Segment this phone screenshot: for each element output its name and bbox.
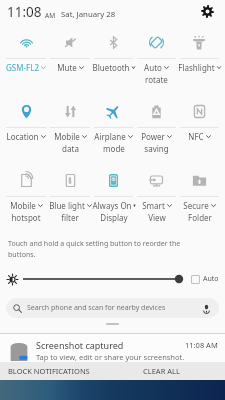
staticText: saving	[144, 143, 169, 154]
button[interactable]: NFC	[178, 95, 221, 164]
staticText: Screenshot captured	[36, 339, 124, 351]
staticText: CLEAR ALL	[143, 366, 180, 376]
button[interactable]: GSM-FL2	[4, 26, 48, 95]
staticText: View	[148, 212, 166, 223]
staticText: Mobile	[54, 131, 80, 142]
button[interactable]: Mute	[48, 26, 92, 95]
staticText: Search phone and scan for nearby devices	[27, 303, 166, 313]
button[interactable]: Secure	[178, 164, 221, 233]
staticText: Flashlight	[178, 62, 215, 73]
staticText: mode	[103, 143, 125, 154]
button[interactable]: Location	[4, 95, 48, 164]
button[interactable]: Mobile	[4, 164, 48, 233]
staticText: Folder	[188, 212, 212, 223]
staticText: hotspot	[11, 212, 41, 223]
staticText: Auto	[144, 62, 162, 73]
button[interactable]: Smart	[135, 164, 178, 233]
button[interactable]: Blue light	[48, 164, 92, 233]
button[interactable]: Brightness	[23, 272, 184, 286]
button[interactable]: Bluetooth	[92, 26, 135, 95]
button[interactable]: Mobile	[48, 95, 92, 164]
staticText: Touch and hold a quick setting button to…	[8, 239, 181, 259]
button[interactable]: Search phone and scan for nearby devices	[6, 298, 219, 318]
staticText: Always On	[92, 200, 132, 211]
staticText: Bluetooth	[92, 62, 130, 73]
staticText: Location	[6, 131, 39, 142]
staticText: 11:08 AM	[185, 340, 218, 350]
staticText: BLOCK NOTIFICATIONS	[8, 366, 90, 376]
button[interactable]: Flashlight	[178, 26, 221, 95]
button[interactable]: CLEAR ALL	[98, 362, 225, 380]
staticText: Auto	[203, 274, 219, 284]
button[interactable]: Airplane	[92, 95, 135, 164]
staticText: Mobile	[10, 200, 36, 211]
staticText: GSM-FL2	[6, 62, 39, 73]
staticText: rotate	[145, 74, 168, 85]
button[interactable]: Always On	[92, 164, 135, 233]
button[interactable]: BLOCK NOTIFICATIONS	[0, 362, 98, 380]
button[interactable]: Auto	[191, 274, 219, 284]
staticText: AM	[45, 11, 56, 20]
staticText: NFC	[188, 131, 204, 142]
staticText: filter	[61, 212, 79, 223]
button[interactable]: Auto	[135, 26, 178, 95]
staticText: Sat, January 28	[61, 9, 116, 20]
staticText: Display	[100, 212, 128, 223]
staticText: 11:08	[7, 3, 42, 21]
button[interactable]: Power	[135, 95, 178, 164]
button[interactable]: Settings	[200, 4, 214, 18]
staticText: Power	[141, 131, 165, 142]
staticText: Airplane	[94, 131, 126, 142]
staticText: Tap to view, edit or share your screensh…	[36, 352, 185, 362]
staticText: Mute	[57, 62, 77, 73]
staticText: Smart	[142, 200, 165, 211]
staticText: Blue light	[49, 200, 85, 211]
staticText: data	[62, 143, 79, 154]
staticText: Secure	[183, 200, 209, 211]
